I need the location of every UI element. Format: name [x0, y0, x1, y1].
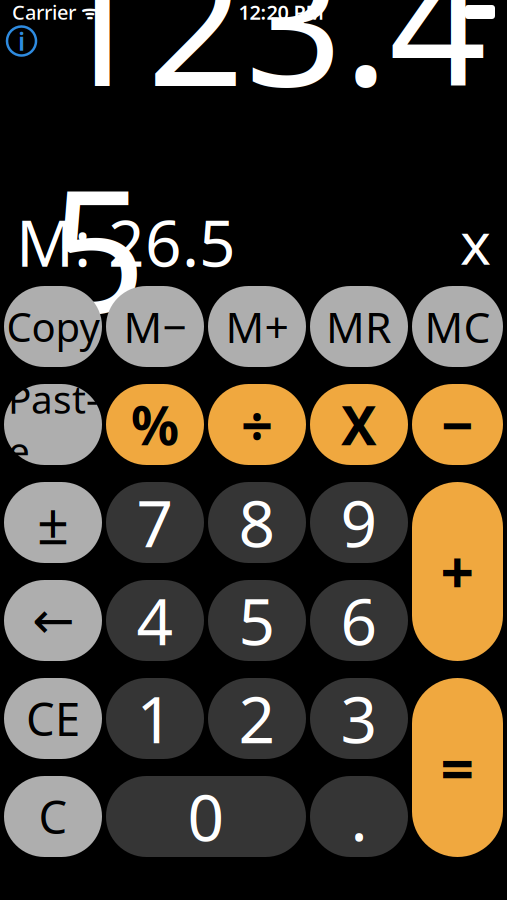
button[interactable]: 4	[106, 580, 204, 661]
button[interactable]: X	[310, 384, 408, 465]
staticText: 7	[136, 480, 173, 565]
button[interactable]: MC	[412, 286, 503, 367]
button[interactable]: Copy	[4, 286, 102, 367]
button[interactable]: .	[310, 776, 408, 857]
button[interactable]: Info	[7, 26, 36, 55]
button[interactable]: M+	[208, 286, 306, 367]
staticText: 8	[238, 480, 275, 565]
staticText: 12:20 PM	[238, 0, 324, 25]
button[interactable]: −	[412, 384, 503, 465]
button[interactable]: Clear memory	[460, 203, 491, 281]
staticText: 4	[136, 578, 173, 663]
button[interactable]: ±	[4, 482, 102, 563]
button[interactable]: 5	[208, 580, 306, 661]
staticText: M−	[123, 298, 186, 355]
button[interactable]: 0	[106, 776, 306, 857]
button[interactable]: CE	[4, 678, 102, 759]
staticText: =	[440, 728, 474, 806]
staticText: 1	[136, 676, 173, 761]
staticText: ÷	[241, 387, 273, 462]
staticText: 9	[340, 480, 377, 565]
staticText: 6	[340, 578, 377, 663]
staticText: CE	[26, 688, 80, 749]
staticText: X	[341, 389, 377, 460]
staticText: %	[131, 389, 179, 460]
button[interactable]: M−	[106, 286, 204, 367]
staticText: M: 26.5	[16, 199, 236, 284]
button[interactable]: 3	[310, 678, 408, 759]
staticText: 5	[238, 578, 275, 663]
button[interactable]: 9	[310, 482, 408, 563]
button[interactable]: 6	[310, 580, 408, 661]
staticText: Paste	[8, 373, 98, 476]
staticText: 123.45	[49, 0, 487, 360]
button[interactable]: 2	[208, 678, 306, 759]
button[interactable]: ÷	[208, 384, 306, 465]
button[interactable]: %	[106, 384, 204, 465]
staticText: C	[38, 786, 67, 847]
button[interactable]: 1	[106, 678, 204, 759]
staticText: 3	[340, 676, 377, 761]
button[interactable]: =	[412, 678, 503, 857]
button[interactable]: 7	[106, 482, 204, 563]
staticText: i	[18, 24, 25, 58]
button[interactable]: Paste	[4, 384, 102, 465]
staticText: ±	[37, 485, 69, 560]
staticText: x	[460, 203, 491, 281]
staticText: MC	[424, 298, 490, 355]
staticText: ᯤ	[76, 0, 98, 24]
staticText: 2	[238, 676, 275, 761]
staticText: +	[440, 532, 474, 610]
button[interactable]: ←	[4, 580, 102, 661]
button[interactable]: +	[412, 482, 503, 661]
staticText: .	[350, 774, 367, 859]
staticText: Copy	[6, 300, 99, 353]
staticText: ←	[32, 592, 74, 649]
button[interactable]: 8	[208, 482, 306, 563]
staticText: 0	[187, 774, 224, 859]
staticText: MR	[326, 298, 392, 355]
staticText: M+	[225, 298, 288, 355]
button[interactable]: C	[4, 776, 102, 857]
button[interactable]: MR	[310, 286, 408, 367]
staticText: Carrier	[12, 0, 76, 25]
staticText: −	[441, 387, 474, 462]
